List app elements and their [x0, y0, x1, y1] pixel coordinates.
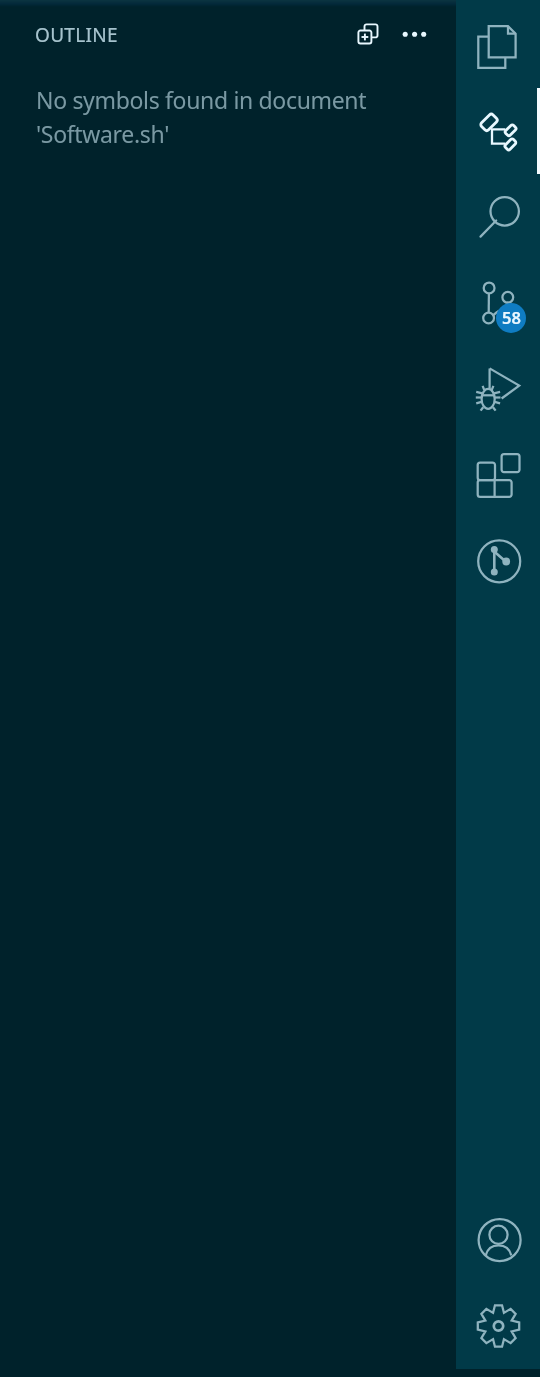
- button[interactable]: Run and Debug: [456, 346, 540, 432]
- button[interactable]: More actions: [396, 13, 438, 55]
- button[interactable]: Open in new window: [347, 13, 389, 55]
- button[interactable]: Explorer: [456, 2, 540, 88]
- button[interactable]: Extensions: [456, 432, 540, 518]
- staticText: No symbols found in document 'Software.s…: [36, 84, 456, 150]
- button[interactable]: Settings: [456, 1283, 540, 1369]
- button[interactable]: Pull Requests: [456, 518, 540, 604]
- button[interactable]: Source Control: [456, 260, 540, 346]
- staticText: OUTLINE: [35, 22, 118, 48]
- button[interactable]: Outline: [456, 88, 540, 174]
- button[interactable]: Accounts: [456, 1197, 540, 1283]
- button[interactable]: Search: [456, 174, 540, 260]
- staticText: 58: [502, 306, 521, 328]
